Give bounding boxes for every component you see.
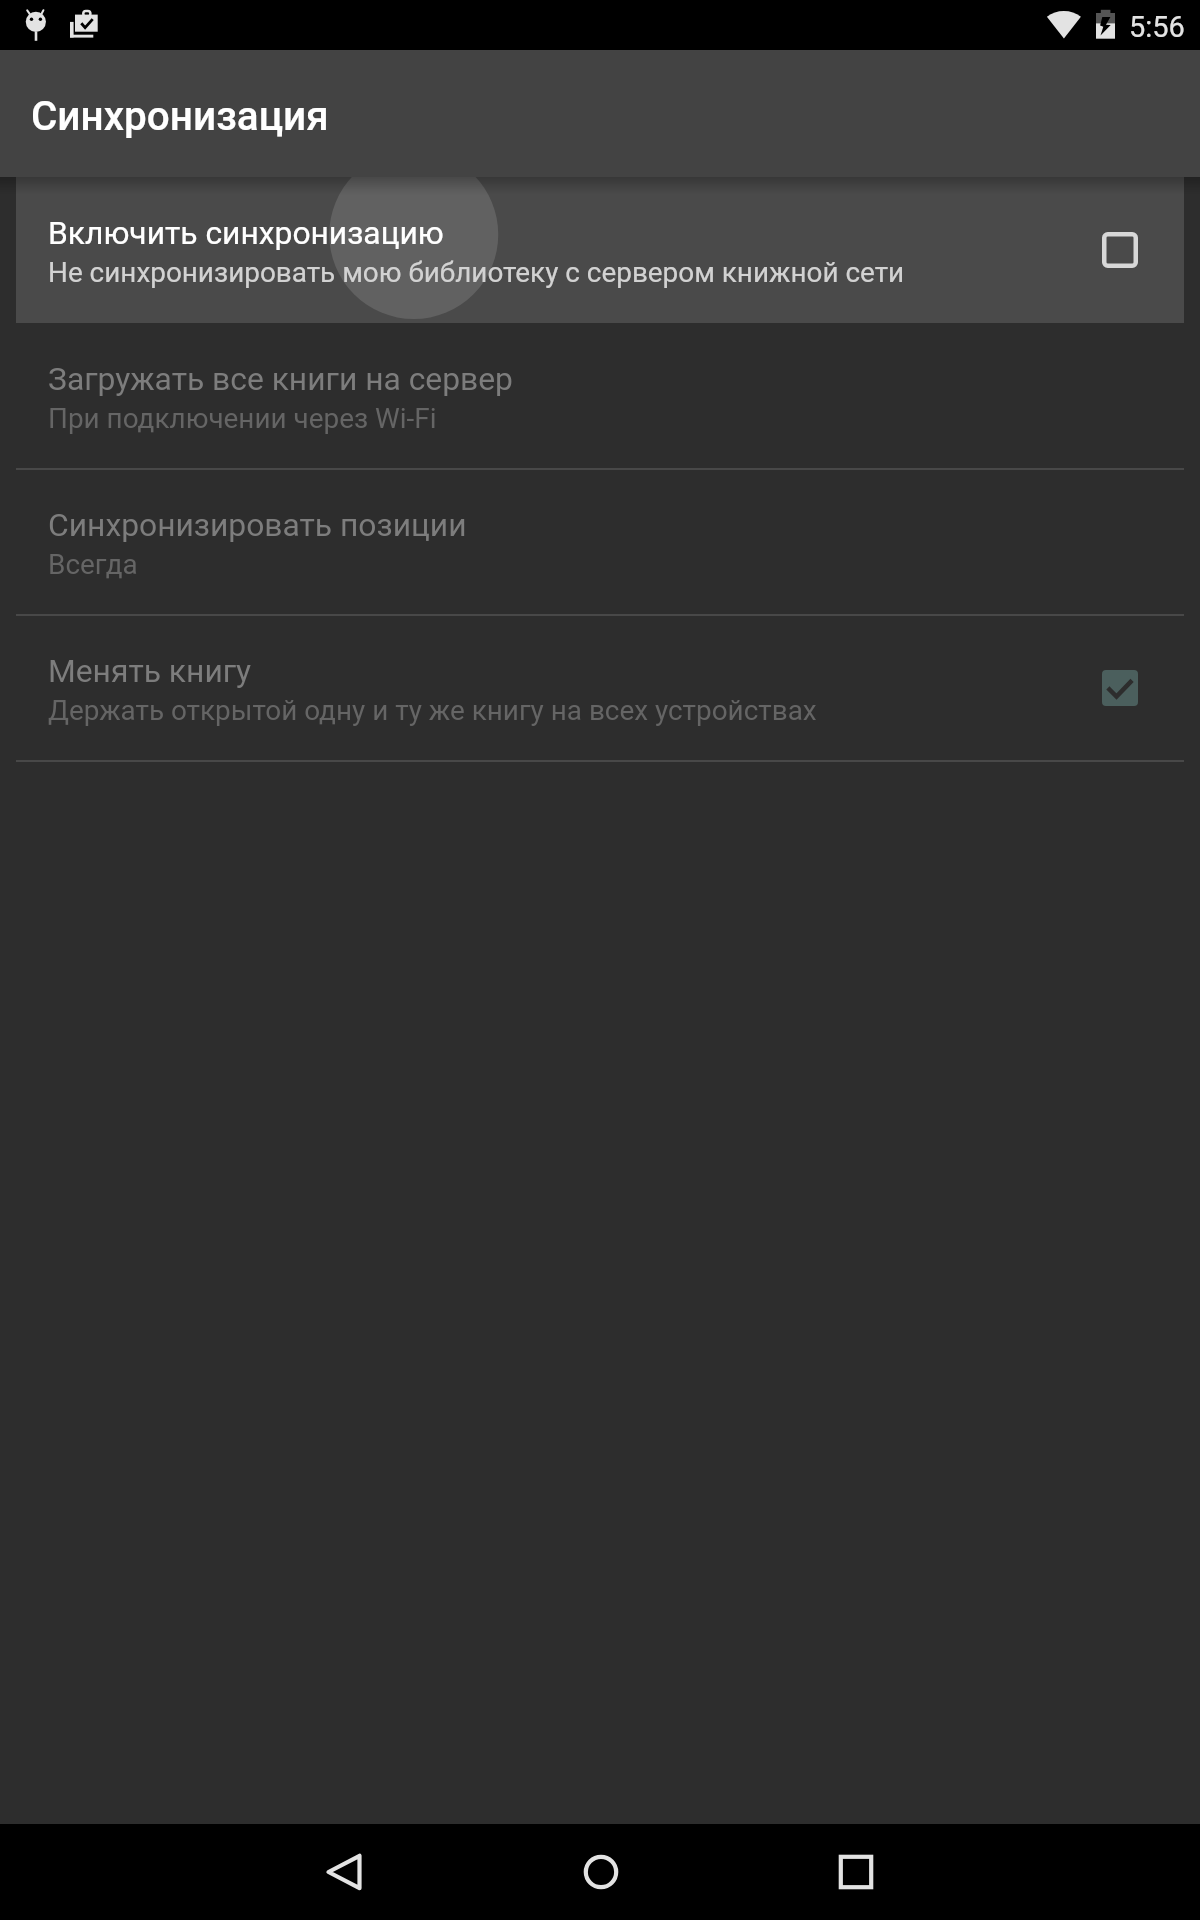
staticText: Держать открытой одну и ту же книгу на в… [48,694,817,727]
staticText: Всегда [48,548,138,581]
staticText: При подключении через Wi-Fi [48,402,437,435]
button[interactable]: Toggle Включить синхронизацию [1102,232,1138,268]
button[interactable]: Синхронизировать позиции [0,469,1200,615]
button[interactable]: Recent apps [796,1824,916,1920]
staticText: Синхронизация [31,93,329,140]
staticText: Загружать все книги на сервер [48,360,513,397]
staticText: Менять книгу [48,652,252,689]
button[interactable]: Загружать все книги на сервер [0,323,1200,469]
button[interactable]: Back [284,1824,404,1920]
button[interactable]: Toggle Менять книгу [1102,670,1138,706]
button[interactable]: Менять книгу [0,615,1200,761]
staticText: 5:56 [1129,10,1185,44]
button[interactable]: Home [541,1824,661,1920]
staticText: Не синхронизировать мою библиотеку с сер… [48,256,905,289]
staticText: Включить синхронизацию [48,214,444,251]
button[interactable]: Включить синхронизацию [0,177,1200,323]
staticText: Синхронизировать позиции [48,506,467,543]
